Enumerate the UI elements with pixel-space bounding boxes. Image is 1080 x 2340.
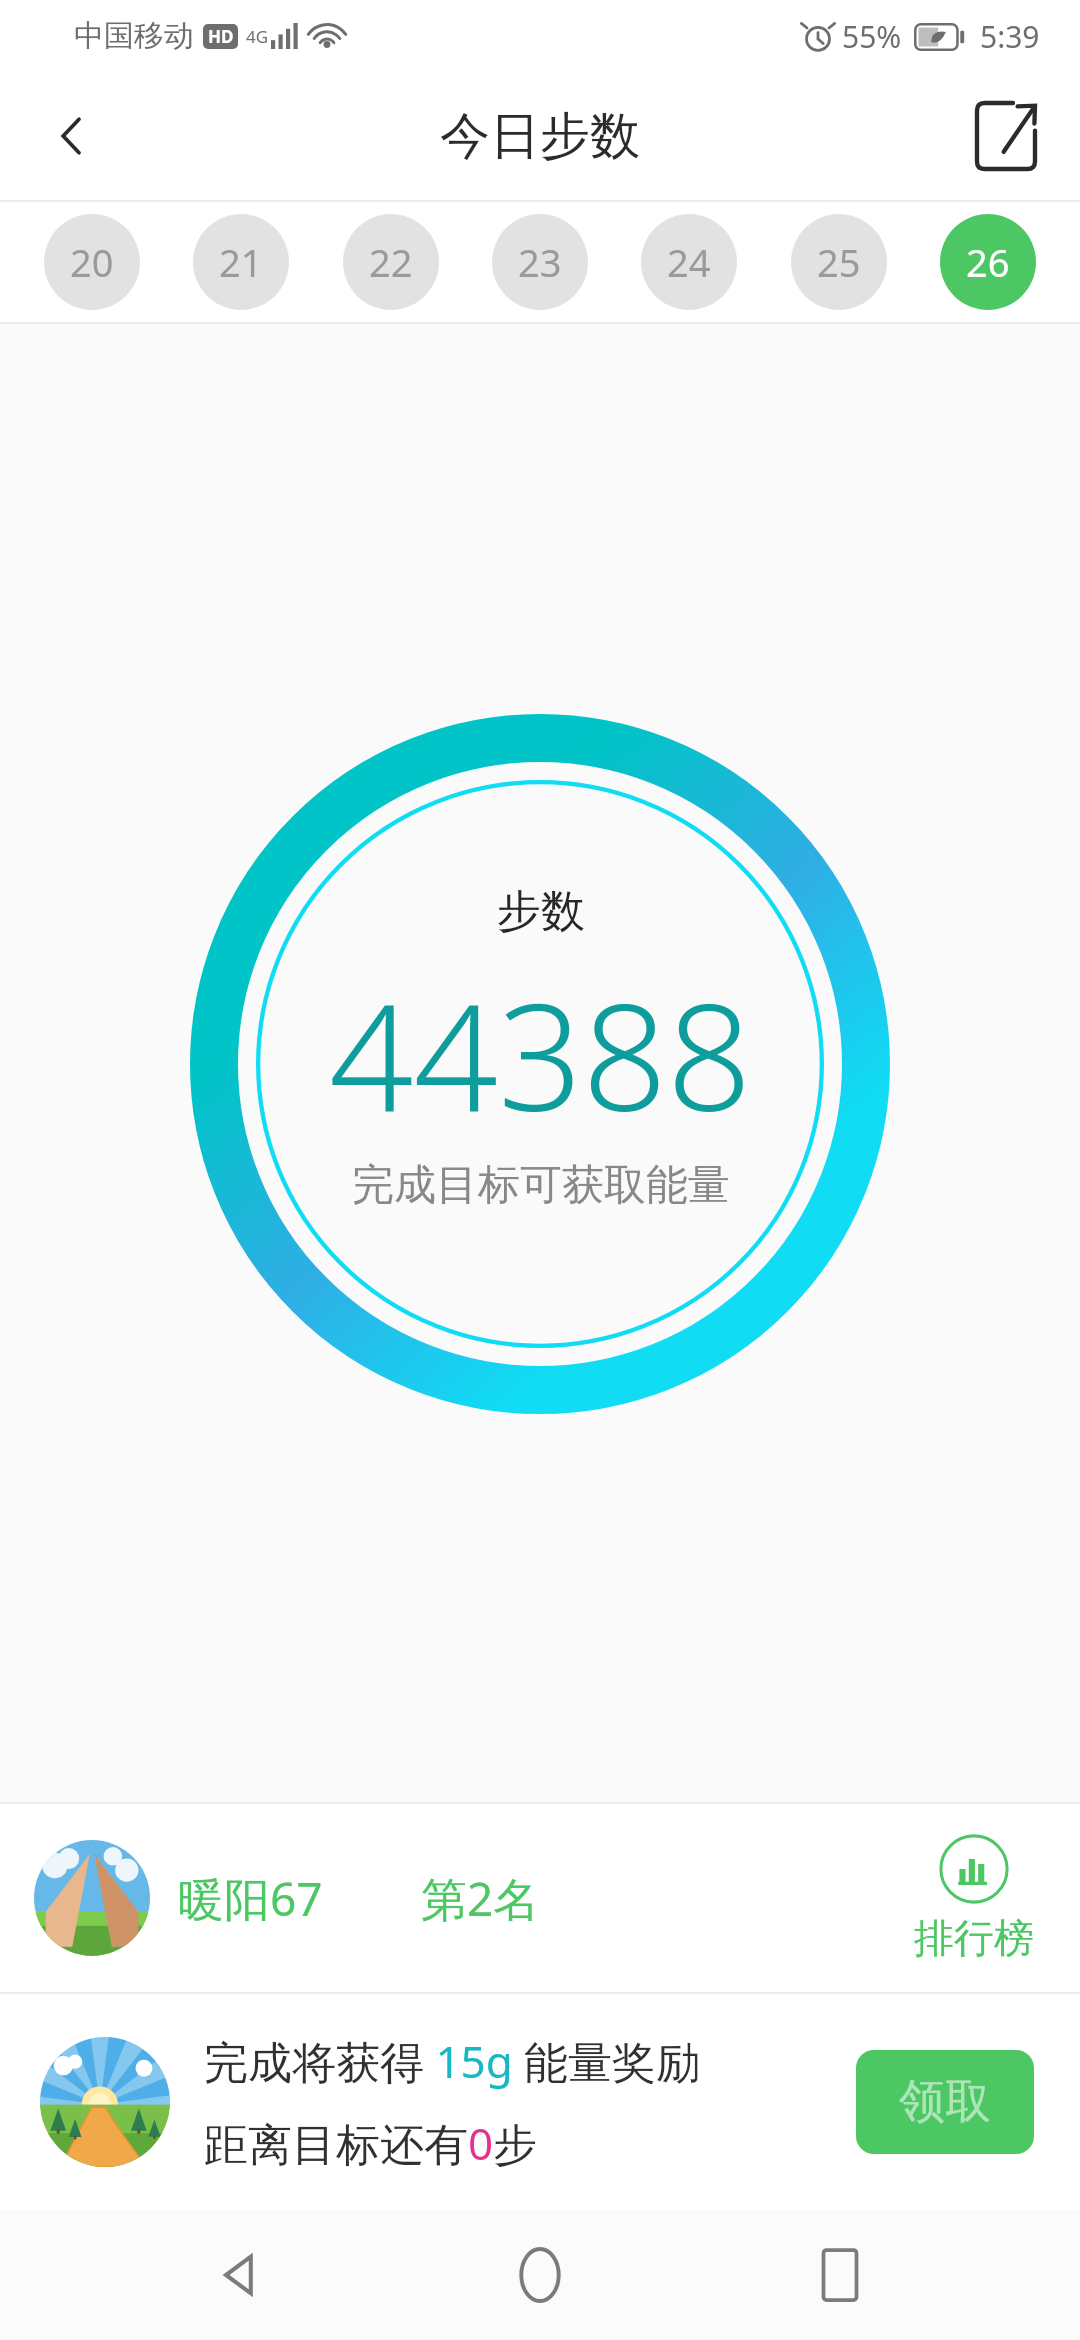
button[interactable]: Recents: [780, 2215, 900, 2335]
button[interactable]: Home: [480, 2215, 600, 2335]
staticText: 排行榜: [914, 1913, 1034, 1963]
staticText: 21: [219, 236, 263, 288]
staticText: 5:39: [980, 16, 1040, 57]
staticText: 距离目标还有0步: [204, 2113, 538, 2173]
staticText: 44388: [329, 953, 752, 1155]
staticText: 22: [369, 236, 413, 288]
staticText: 25: [817, 236, 861, 288]
button[interactable]: 领取: [856, 2050, 1034, 2154]
staticText: HD: [208, 25, 234, 48]
staticText: 步数: [497, 884, 585, 939]
button[interactable]: 21: [193, 214, 289, 310]
button[interactable]: 排行榜: [908, 1833, 1040, 1963]
staticText: 完成将获得 15g 能量奖励: [204, 2031, 701, 2091]
button[interactable]: Share: [958, 88, 1054, 184]
button[interactable]: 暖阳67: [0, 1804, 1080, 1992]
staticText: 完成目标可获取能量: [352, 1159, 730, 1212]
staticText: 领取: [899, 2073, 991, 2131]
button[interactable]: 25: [791, 214, 887, 310]
staticText: 中国移动: [74, 17, 194, 55]
button[interactable]: Back: [180, 2215, 300, 2335]
staticText: 55%: [842, 16, 902, 57]
button[interactable]: Back: [24, 88, 120, 184]
staticText: 24: [667, 236, 711, 288]
button[interactable]: 26: [940, 214, 1036, 310]
staticText: 暖阳67: [178, 1867, 323, 1930]
button[interactable]: 22: [343, 214, 439, 310]
button[interactable]: 23: [492, 214, 588, 310]
staticText: 26: [966, 236, 1010, 288]
button[interactable]: 24: [641, 214, 737, 310]
staticText: 20: [70, 236, 114, 288]
staticText: 第2名: [421, 1867, 540, 1930]
staticText: 今日步数: [440, 105, 640, 168]
button[interactable]: 20: [44, 214, 140, 310]
staticText: 23: [518, 236, 562, 288]
staticText: 4G: [246, 25, 269, 48]
